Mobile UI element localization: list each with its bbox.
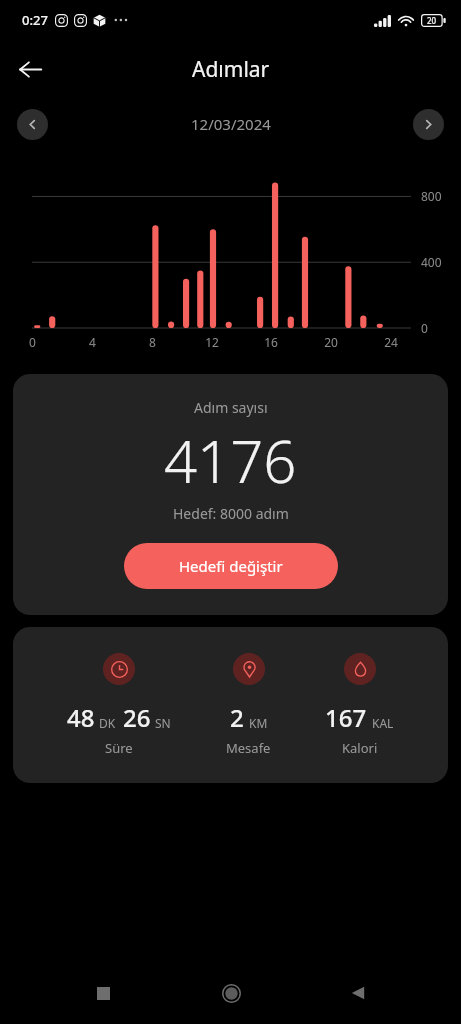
staticText: Adım sayısı [194,398,268,417]
staticText: DK [99,715,116,731]
staticText: KM [249,715,268,731]
button[interactable]: 2 [226,653,271,757]
staticText: Kalori [342,739,378,757]
staticText: Hedef: 8000 adım [173,504,289,523]
staticText: KAL [372,715,394,731]
button[interactable]: 48 [67,653,171,757]
staticText: 12/03/2024 [191,114,271,134]
button[interactable]: Back [6,45,54,93]
staticText: 800 [421,188,442,204]
staticText: Adımlar [192,55,270,84]
staticText: 8 [149,334,156,350]
staticText: Mesafe [226,739,271,757]
staticText: 167 [325,701,367,734]
staticText: 20 [324,334,338,350]
button[interactable]: Back [334,969,382,1017]
staticText: 4 [89,334,96,350]
staticText: Hedefi değiştir [179,556,283,576]
button[interactable]: Recent apps [79,969,127,1017]
staticText: 48 [67,701,95,734]
staticText: 4176 [164,421,297,500]
staticText: 16 [264,334,278,350]
staticText: 26 [123,701,151,734]
button[interactable]: Next day [413,109,444,140]
staticText: 24 [384,334,398,350]
button[interactable]: Home [207,969,255,1017]
staticText: 400 [421,254,442,270]
button[interactable]: Previous day [17,109,48,140]
staticText: 20 [427,15,437,26]
button[interactable]: Hedefi değiştir [124,543,338,589]
staticText: 12 [205,334,219,350]
staticText: SN [155,715,171,731]
staticText: 0:27 [22,11,48,29]
button[interactable]: 167 [325,653,394,757]
staticText: 0 [421,320,428,336]
staticText: Süre [105,739,133,757]
staticText: 2 [230,701,244,734]
staticText: 0 [29,334,36,350]
